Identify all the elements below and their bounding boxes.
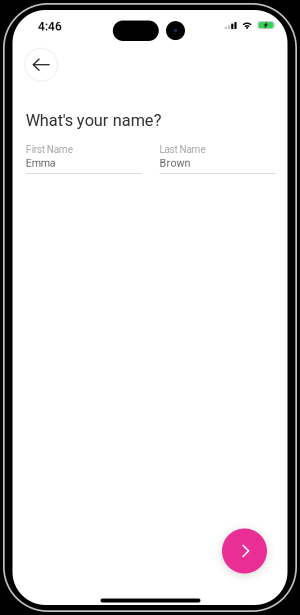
staticText: First Name (26, 144, 73, 155)
button[interactable]: Next (222, 528, 267, 573)
staticText: Brown (159, 157, 190, 169)
staticText: 4:46 (38, 20, 62, 33)
staticText: What's your name? (26, 111, 162, 130)
button[interactable]: Back (24, 48, 58, 82)
staticText: Emma (26, 157, 56, 169)
staticText: Last Name (159, 144, 205, 155)
